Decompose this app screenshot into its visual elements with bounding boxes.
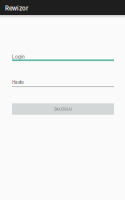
button[interactable]: ZALOGUJ: [12, 103, 114, 115]
staticText: Hasło: [12, 80, 24, 85]
staticText: ZALOGUJ: [54, 107, 72, 111]
staticText: Login: [12, 54, 25, 59]
button[interactable]: Hasło: [12, 80, 114, 87]
button[interactable]: Login: [12, 54, 114, 61]
staticText: Rewizor: [5, 5, 28, 12]
